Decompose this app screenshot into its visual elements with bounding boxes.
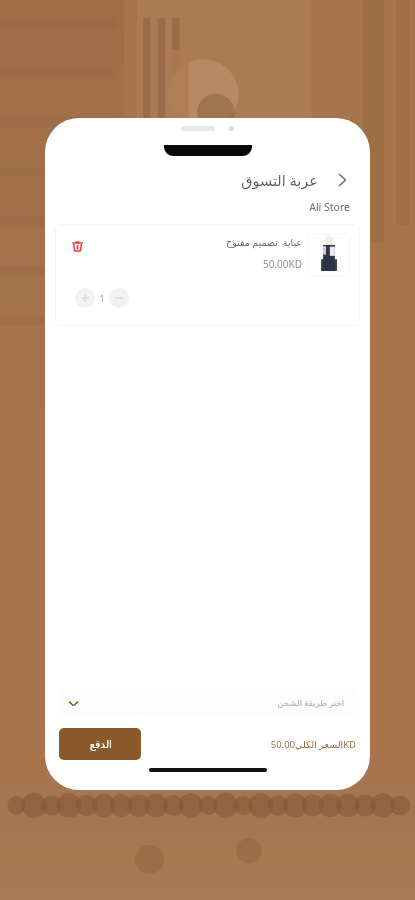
staticText: Ali Store (309, 200, 350, 214)
staticText: عربة التسوق (241, 170, 318, 190)
button[interactable]: Delete item (67, 236, 87, 256)
staticText: 50.00KD (262, 257, 302, 271)
button[interactable]: اختر طريقة الشحن (59, 688, 356, 718)
staticText: عباية تصميم مفتوح (226, 236, 302, 249)
button[interactable]: الدفع (59, 728, 141, 760)
button[interactable]: Decrease quantity (109, 288, 129, 308)
staticText: الدفع (89, 738, 112, 750)
staticText: السعر الكلي50.00KD (270, 738, 356, 751)
button[interactable]: Back (330, 168, 354, 192)
staticText: اختر طريقة الشحن (277, 697, 344, 709)
button[interactable]: عباية تصميم مفتوح (55, 224, 360, 326)
button[interactable]: Increase quantity (75, 288, 95, 308)
staticText: 1 (99, 292, 105, 304)
